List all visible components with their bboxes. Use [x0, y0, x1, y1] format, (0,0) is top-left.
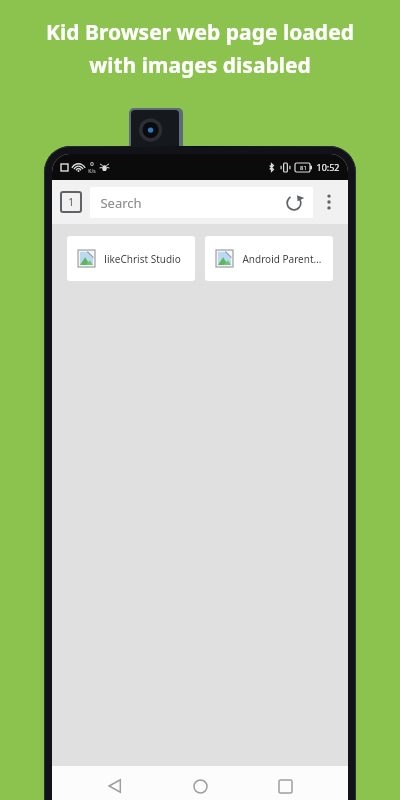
button[interactable]: Tabs [61, 192, 81, 212]
staticText: Kid Browser web page loaded [46, 18, 354, 47]
staticText: 0 [90, 160, 94, 168]
button[interactable]: Search [90, 187, 313, 218]
staticText: 1 [68, 195, 74, 209]
button[interactable]: Recent apps [263, 766, 307, 800]
staticText: K/s [88, 168, 96, 175]
button[interactable]: More options [319, 186, 339, 218]
button[interactable]: Android Parent... [205, 236, 333, 281]
button[interactable]: Home [178, 766, 222, 800]
button[interactable]: likeChrist Studio [67, 236, 195, 281]
staticText: Android Parent... [242, 252, 322, 266]
staticText: Search [100, 194, 142, 212]
staticText: likeChrist Studio [104, 252, 181, 266]
staticText: 10:52 [316, 161, 340, 173]
staticText: 81 [300, 164, 307, 172]
staticText: with images disabled [89, 51, 311, 80]
button[interactable]: Back [93, 766, 137, 800]
button[interactable]: Reload [285, 194, 303, 212]
